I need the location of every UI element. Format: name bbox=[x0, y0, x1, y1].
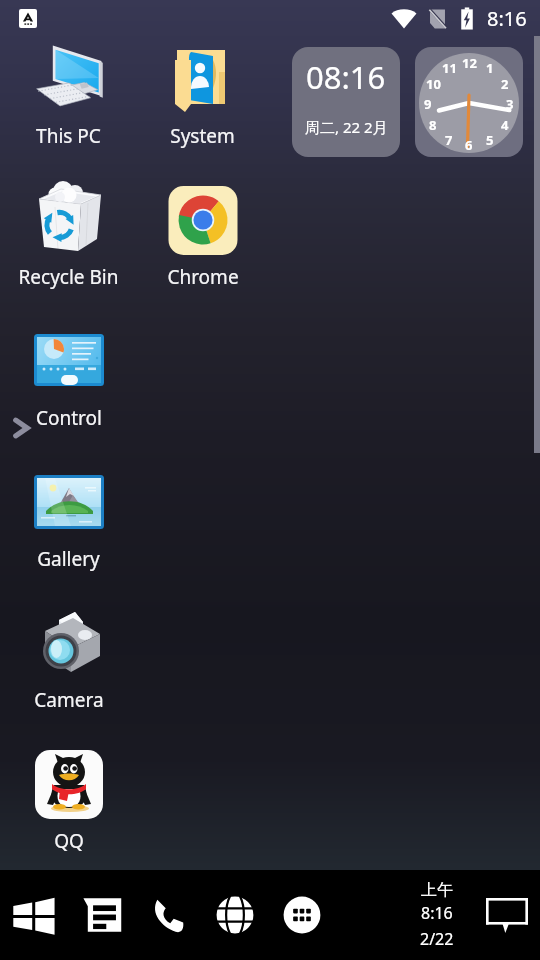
staticText: 上午 bbox=[421, 880, 453, 900]
button[interactable]: Recycle Bin bbox=[1, 183, 136, 290]
button[interactable]: System bbox=[135, 42, 270, 149]
button[interactable]: Next page bbox=[10, 415, 36, 441]
button[interactable]: 08:16 bbox=[292, 47, 400, 157]
staticText: 6 bbox=[465, 136, 473, 152]
staticText: 11 bbox=[442, 59, 457, 75]
staticText: 1 bbox=[486, 59, 494, 75]
button[interactable]: Browser bbox=[201, 870, 268, 960]
staticText: QQ bbox=[54, 828, 84, 854]
staticText: Recycle Bin bbox=[18, 264, 119, 290]
button[interactable]: Phone bbox=[134, 870, 201, 960]
staticText: 8:16 bbox=[487, 5, 527, 32]
button[interactable]: Chrome bbox=[135, 183, 270, 290]
button[interactable]: Control bbox=[1, 324, 136, 431]
button[interactable]: Task view bbox=[67, 870, 134, 960]
staticText: 2/22 bbox=[420, 928, 454, 950]
staticText: Gallery bbox=[37, 546, 100, 572]
staticText: 2 bbox=[501, 75, 509, 91]
button[interactable]: Notifications bbox=[478, 870, 536, 960]
staticText: This PC bbox=[36, 123, 101, 149]
staticText: Control bbox=[36, 405, 102, 431]
staticText: Camera bbox=[34, 687, 104, 713]
button[interactable]: Input method bbox=[19, 9, 37, 28]
staticText: 4 bbox=[501, 116, 509, 132]
button[interactable]: Start bbox=[0, 870, 67, 960]
staticText: Chrome bbox=[167, 264, 239, 290]
button[interactable]: All apps bbox=[268, 870, 335, 960]
staticText: 9 bbox=[424, 95, 432, 111]
staticText: 8:16 bbox=[421, 902, 453, 924]
staticText: 10 bbox=[426, 75, 441, 91]
staticText: 12 bbox=[462, 54, 477, 70]
button[interactable]: Analog clock bbox=[415, 47, 523, 157]
staticText: 8 bbox=[429, 116, 437, 132]
staticText: 7 bbox=[445, 131, 453, 147]
button[interactable]: Camera bbox=[1, 606, 136, 713]
button[interactable]: Gallery bbox=[1, 465, 136, 572]
staticText: 08:16 bbox=[306, 56, 386, 98]
staticText: 3 bbox=[506, 95, 514, 111]
staticText: 5 bbox=[486, 131, 494, 147]
button[interactable]: 上午 bbox=[418, 880, 456, 950]
staticText: 周二, 22 2月 bbox=[305, 117, 388, 137]
button[interactable]: QQ bbox=[1, 747, 136, 854]
button[interactable]: This PC bbox=[1, 42, 136, 149]
staticText: System bbox=[170, 123, 235, 149]
